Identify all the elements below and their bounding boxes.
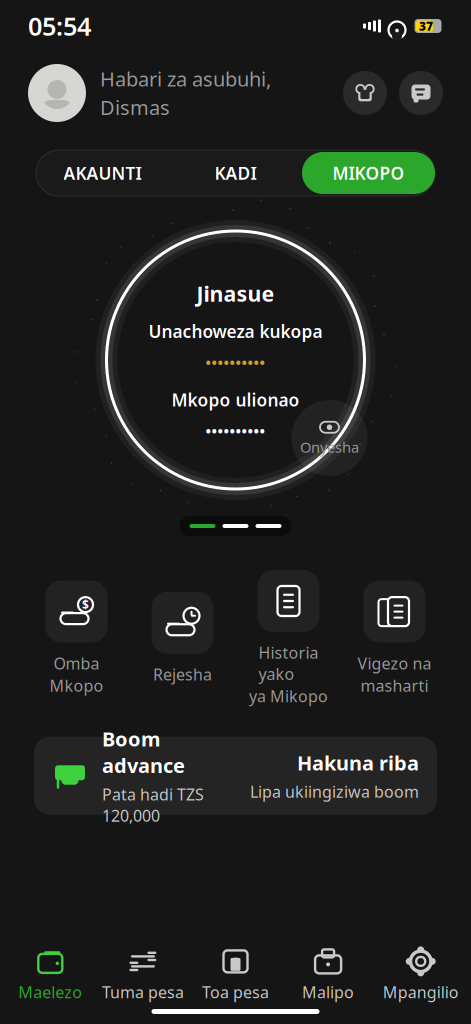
staticText: 05:54 xyxy=(28,9,91,43)
button[interactable]: Boom advance xyxy=(34,737,437,815)
button[interactable]: Vigezo na xyxy=(347,581,441,696)
staticText: Rejesha xyxy=(153,664,212,685)
staticText: Dismas xyxy=(100,94,170,121)
button[interactable]: Messages xyxy=(399,71,443,115)
button[interactable]: $ xyxy=(29,581,123,696)
staticText: KADI xyxy=(214,161,256,184)
button[interactable]: Historia yako xyxy=(241,570,335,707)
button[interactable]: Malipo xyxy=(282,947,374,1003)
staticText: Tuma pesa xyxy=(102,981,184,1003)
staticText: Mpangilio xyxy=(383,981,459,1003)
button[interactable]: Toa pesa xyxy=(189,947,282,1003)
staticText: Habari za asubuhi, xyxy=(100,65,271,92)
staticText: Mkopo xyxy=(49,675,103,696)
staticText: Boom advance xyxy=(102,725,185,778)
staticText: Toa pesa xyxy=(202,981,269,1003)
button[interactable]: AKAUNTI xyxy=(36,150,169,196)
staticText: Onyesha xyxy=(300,437,359,457)
staticText: Malipo xyxy=(302,981,354,1003)
staticText: masharti xyxy=(360,675,428,696)
staticText: 37 xyxy=(419,18,433,34)
staticText: MIKOPO xyxy=(332,161,404,184)
button[interactable]: Rejesha xyxy=(135,592,229,685)
button[interactable]: KADI xyxy=(169,150,302,196)
staticText: Maelezo xyxy=(18,981,82,1003)
staticText: Mkopo ulionao xyxy=(171,388,299,411)
button[interactable]: Maelezo xyxy=(4,947,97,1003)
staticText: Unachoweza kukopa xyxy=(148,320,322,343)
button[interactable]: Mpangilio xyxy=(374,947,467,1003)
staticText: •••••••••• xyxy=(205,353,265,372)
staticText: Pata hadi TZS 120,000 xyxy=(102,784,204,826)
staticText: Omba xyxy=(53,653,99,674)
button[interactable]: Onyesha xyxy=(291,400,367,476)
staticText: Jinasue xyxy=(196,279,274,308)
staticText: •••••••••• xyxy=(205,421,265,441)
staticText: Lipa ukiingiziwa boom xyxy=(250,781,419,802)
staticText: Historia yako xyxy=(258,642,318,684)
button[interactable]: MIKOPO xyxy=(302,152,435,194)
staticText: ya Mikopo xyxy=(249,685,328,707)
staticText: $ xyxy=(82,597,89,613)
staticText: Vigezo na xyxy=(357,653,431,674)
button[interactable]: Tuma pesa xyxy=(97,947,189,1003)
staticText: AKAUNTI xyxy=(63,161,141,184)
staticText: Hakuna riba xyxy=(297,749,419,776)
button[interactable]: Favorites xyxy=(343,71,387,115)
